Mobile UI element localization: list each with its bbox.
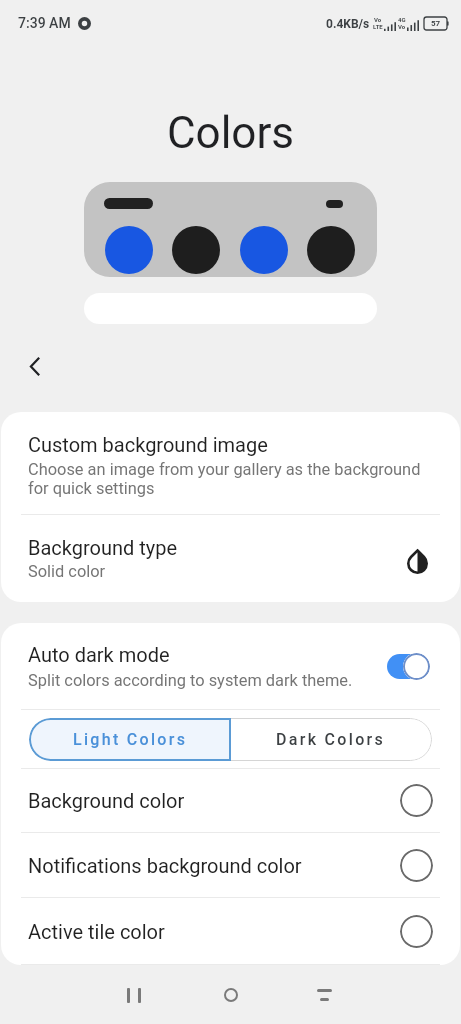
button[interactable] (29, 718, 230, 761)
button[interactable]: Back (13, 344, 57, 388)
staticText: Background type (28, 536, 178, 559)
button[interactable]: Notifications background color (1, 833, 460, 897)
button[interactable]: Auto dark mode toggle (387, 652, 431, 680)
button[interactable]: Light Colors (29, 718, 231, 761)
staticText: Active tile color (28, 920, 400, 943)
staticText: Dark Colors (276, 730, 386, 749)
staticText: 0.4KB/s (326, 17, 370, 31)
staticText: LTE (373, 23, 383, 30)
staticText: Split colors according to system dark th… (28, 671, 353, 690)
staticText: Custom background image (28, 433, 268, 456)
staticText: Light Colors (73, 730, 188, 749)
staticText: 7:39 AM (18, 15, 71, 31)
button[interactable]: Home (207, 971, 255, 1019)
staticText: Colors (0, 107, 461, 159)
staticText: Background color (28, 789, 400, 812)
button[interactable]: Active tile color (1, 898, 460, 964)
button[interactable]: Dark Colors (230, 718, 432, 761)
staticText: 4G (398, 16, 406, 23)
button[interactable]: Back (110, 971, 158, 1019)
button[interactable]: Auto dark mode (1, 623, 460, 709)
staticText: Solid color (28, 562, 106, 581)
staticText: 57 (431, 19, 441, 28)
button[interactable]: Recents (300, 971, 348, 1019)
staticText: Choose an image from your gallery as the… (28, 460, 430, 498)
button[interactable]: Background color (1, 769, 460, 832)
button[interactable]: Background type (1, 515, 460, 602)
staticText: Vo (398, 23, 406, 30)
staticText: Notifications background color (28, 854, 400, 877)
button[interactable]: Custom background image (1, 412, 460, 514)
staticText: Vo (374, 16, 382, 23)
staticText: Auto dark mode (28, 643, 170, 666)
